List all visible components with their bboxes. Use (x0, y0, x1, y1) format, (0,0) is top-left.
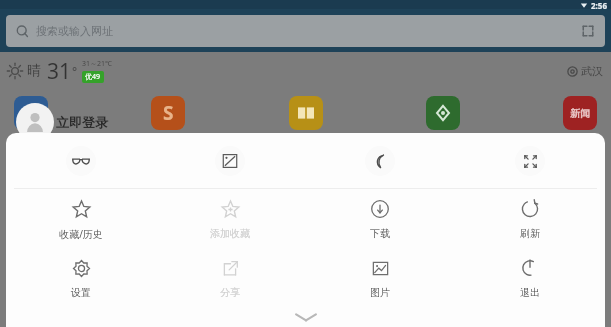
staticText: 下载 (370, 227, 390, 240)
button[interactable]: Shortcut (14, 96, 48, 130)
button[interactable]: 添加收藏 (155, 189, 305, 249)
button[interactable]: 退出 (455, 249, 605, 307)
staticText: 立即登录 (56, 114, 108, 130)
staticText: 31 (47, 57, 72, 86)
button[interactable]: Eye protection mode (6, 133, 155, 188)
button[interactable]: Shortcut (289, 96, 323, 130)
staticText: 搜索或输入网址 (36, 24, 113, 38)
staticText: 晴 (27, 62, 41, 80)
button[interactable]: Full screen (455, 133, 605, 188)
button[interactable]: 搜索或输入网址 (6, 15, 605, 47)
staticText: 收藏/历史 (59, 227, 103, 241)
button[interactable]: 图片 (305, 249, 455, 307)
button[interactable]: Night mode (305, 133, 455, 188)
staticText: 添加收藏 (210, 227, 250, 240)
staticText: 退出 (520, 286, 540, 299)
button[interactable]: Shortcut (563, 96, 597, 130)
button[interactable]: No image mode (155, 133, 305, 188)
other: Scan QR code (581, 24, 595, 38)
staticText: 设置 (71, 286, 91, 299)
button[interactable]: 设置 (6, 249, 155, 307)
staticText: 新闻 (570, 107, 590, 120)
staticText: 刷新 (520, 227, 540, 240)
button[interactable]: 立即登录 (16, 103, 108, 141)
button[interactable]: 下载 (305, 189, 455, 249)
staticText: 优49 (85, 72, 101, 82)
staticText: 31～21℃ (82, 59, 112, 69)
staticText: 分享 (220, 286, 240, 299)
button[interactable]: 分享 (155, 249, 305, 307)
staticText: 图片 (370, 286, 390, 299)
staticText: ° (72, 63, 78, 79)
button[interactable]: Shortcut (151, 96, 185, 130)
staticText: 2:56 (591, 0, 607, 9)
button[interactable]: 刷新 (455, 189, 605, 249)
button[interactable]: Shortcut (426, 96, 460, 130)
staticText: S (163, 100, 174, 126)
staticText: 武汉 (581, 64, 603, 78)
button[interactable]: Collapse menu (6, 307, 605, 327)
button[interactable]: 收藏/历史 (6, 189, 155, 249)
